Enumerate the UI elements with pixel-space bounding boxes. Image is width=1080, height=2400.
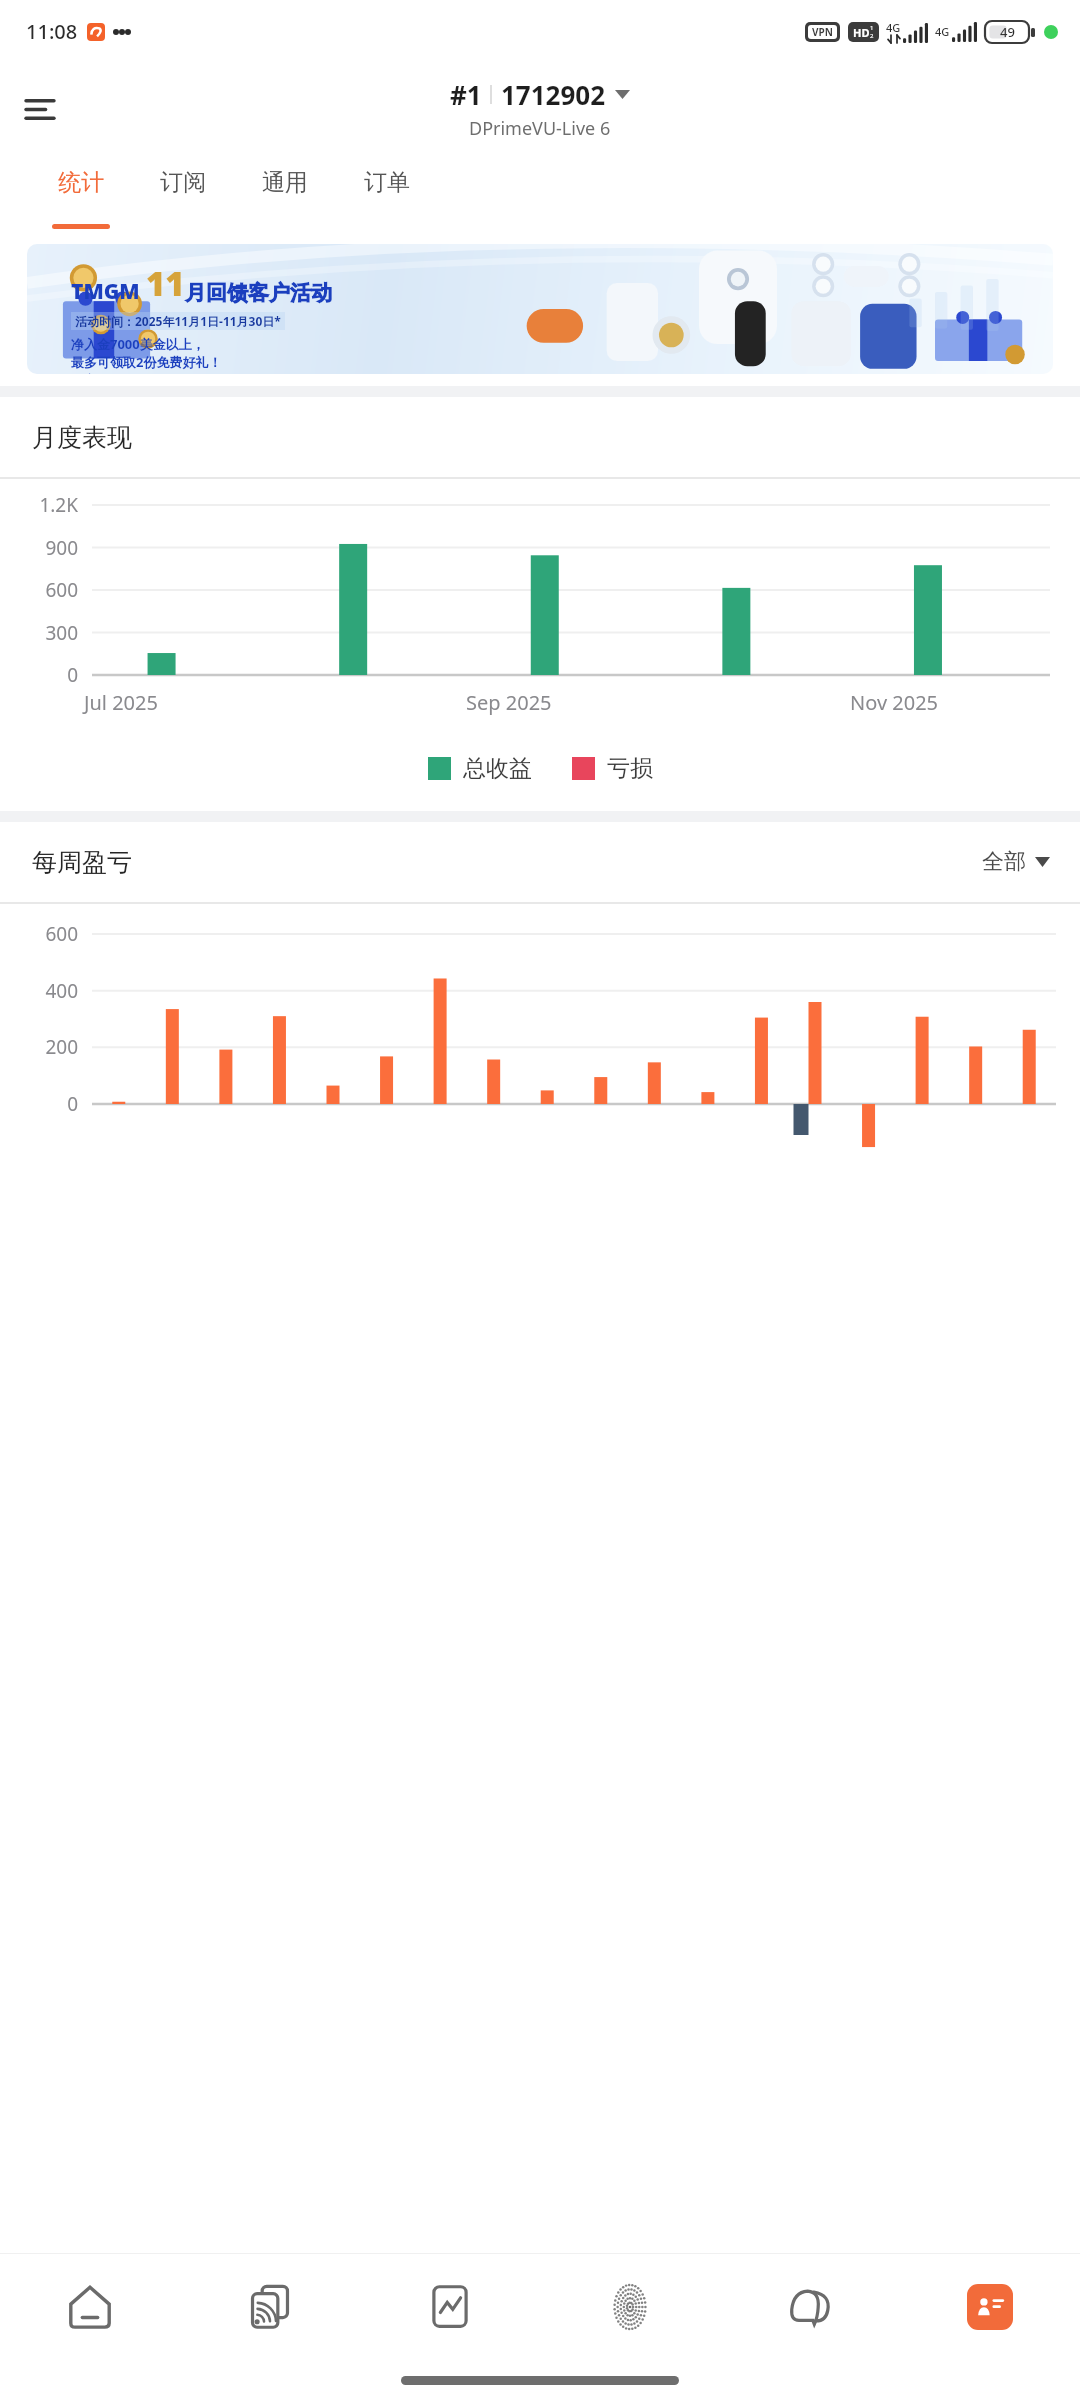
staticText: 11 [146,261,185,306]
staticText: 最高价值¥2000！ [71,371,174,374]
button[interactable]: Menu [8,77,72,141]
staticText: 11:08 [26,18,78,45]
staticText: 每周盈亏 [32,847,132,878]
staticText: 300 [0,620,78,646]
button[interactable]: Discover [540,2254,720,2360]
staticText: 订阅 [160,168,206,197]
staticText: 1 [870,24,874,32]
staticText: 总收益 [463,754,532,783]
staticText: 600 [0,921,78,947]
staticText: 4G [935,24,950,39]
staticText: HD [853,25,870,40]
staticText: 亏损 [607,754,653,783]
staticText: 49 [1000,23,1015,41]
staticText: TMGM [71,277,140,306]
staticText: 月度表现 [32,422,132,453]
staticText: 600 [0,577,78,603]
button[interactable]: 统计 [30,156,132,232]
button[interactable]: Account [900,2254,1080,2360]
staticText: Jul 2025 [84,689,158,716]
button[interactable]: Home [0,2254,180,2360]
staticText: 2 [870,32,874,40]
staticText: 活动时间：2025年11月1日-11月30日* [75,313,281,329]
button[interactable]: 全部 [982,848,1050,876]
staticText: 通用 [262,168,308,197]
button[interactable]: Markets [360,2254,540,2360]
button[interactable]: 订阅 [132,156,234,232]
button[interactable]: Copy trading [180,2254,360,2360]
staticText: 最多可领取2份免费好礼！ [71,353,222,371]
staticText: #1 [450,77,482,112]
staticText: 200 [0,1034,78,1060]
staticText: 全部 [982,848,1026,876]
button[interactable]: 订单 [336,156,438,232]
staticText: 1.2K [0,492,78,518]
staticText: 统计 [58,168,104,197]
button[interactable]: TMGM [27,244,1053,374]
staticText: 400 [0,978,78,1004]
button[interactable]: #1 [450,77,630,141]
button[interactable]: Support [720,2254,900,2360]
staticText: DPrimeVU-Live 6 [469,116,611,141]
staticText: 订单 [364,168,410,197]
staticText: 净入金7000美金以上， [71,335,205,353]
staticText: 月回馈客户活动 [185,280,332,306]
staticText: VPN [812,25,833,39]
staticText: 1712902 [501,77,606,112]
button[interactable]: 总收益 [428,754,532,783]
staticText: Sep 2025 [466,689,552,716]
staticText: 900 [0,535,78,561]
button[interactable]: 通用 [234,156,336,232]
staticText: 4G [886,20,901,35]
button[interactable]: 亏损 [572,754,653,783]
staticText: 0 [0,662,78,688]
staticText: Nov 2025 [850,689,939,716]
staticText: 0 [0,1091,78,1117]
